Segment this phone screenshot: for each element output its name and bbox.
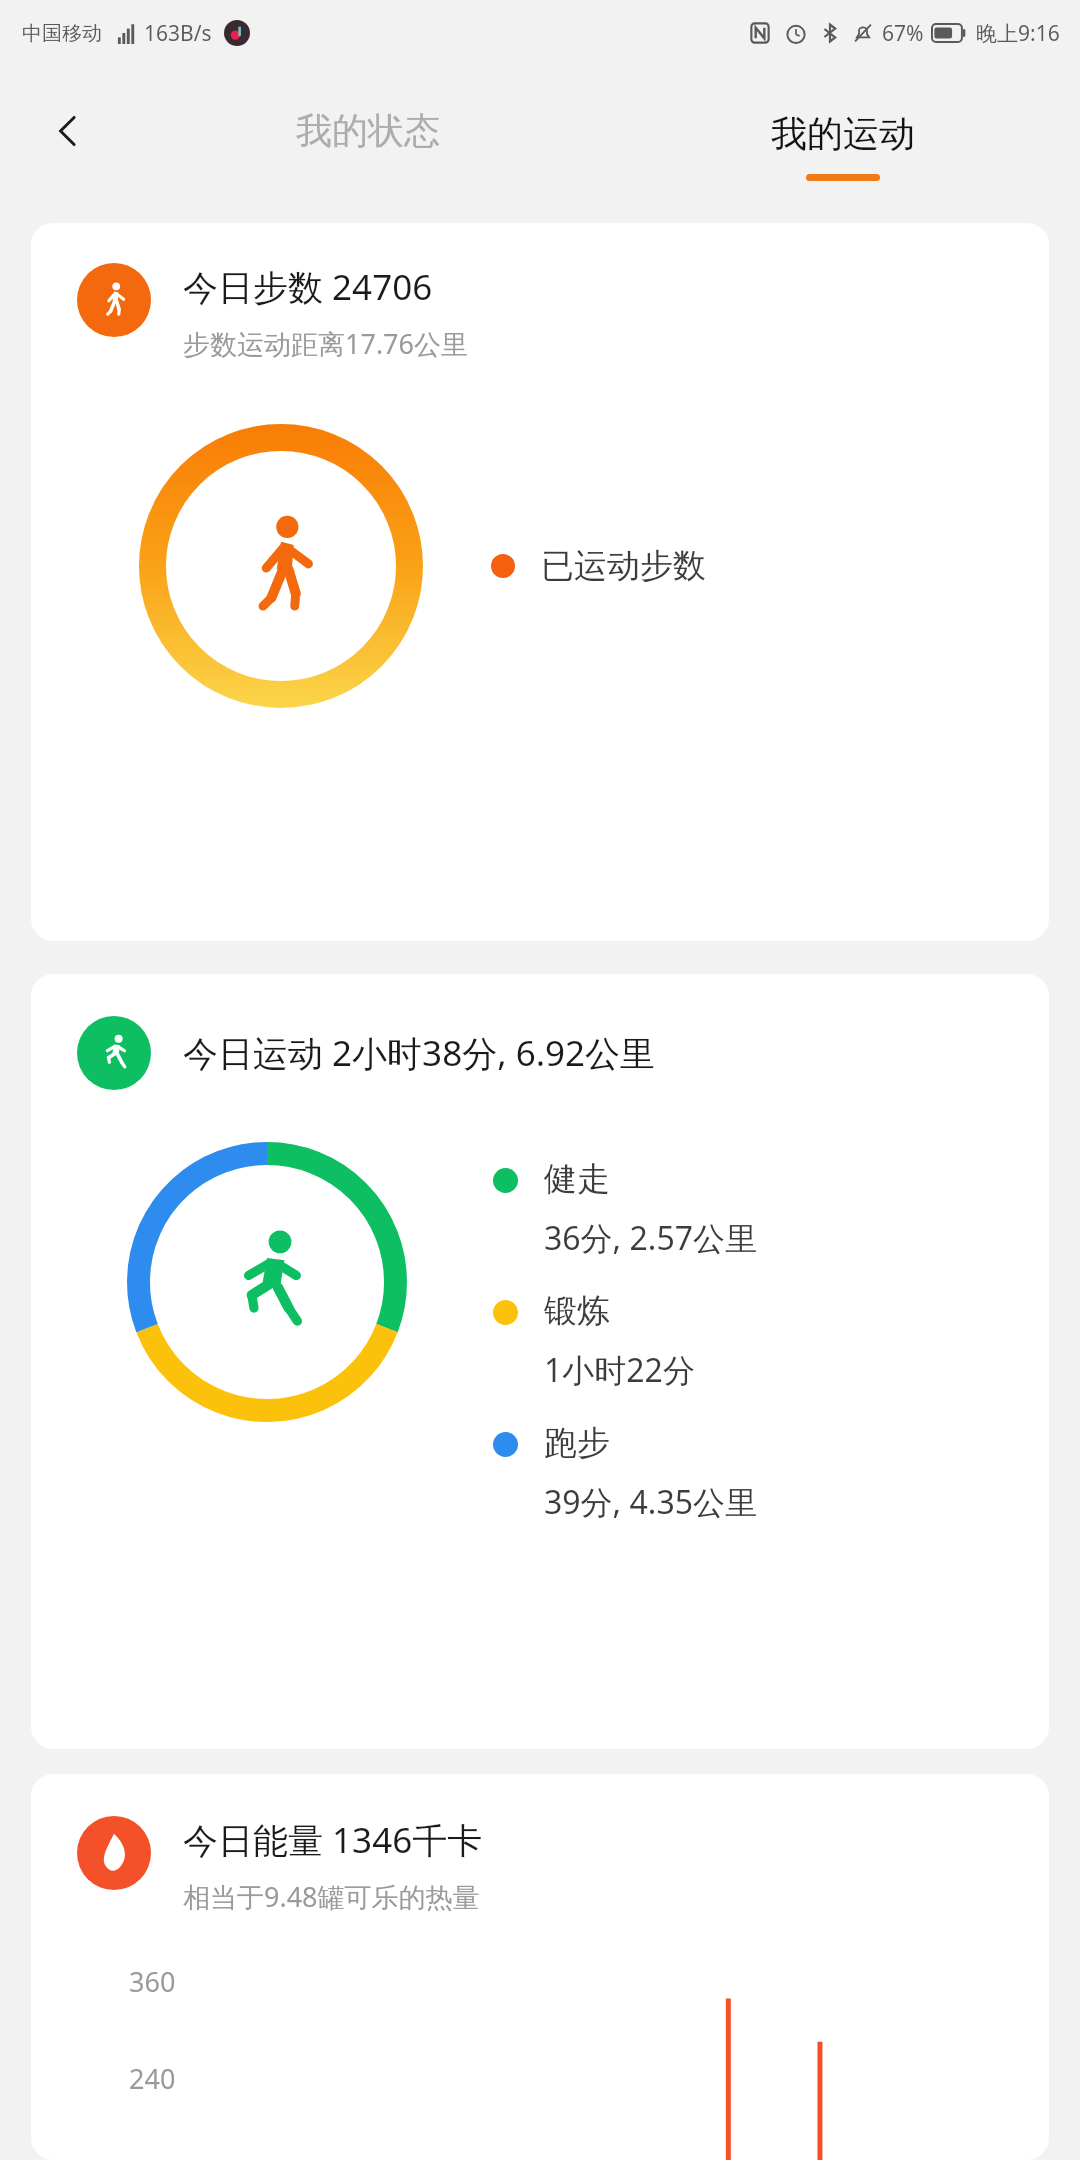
button[interactable]: 今日能量 1346千卡 xyxy=(31,1774,1049,2160)
staticText: 39分, 4.35公里 xyxy=(544,1480,757,1524)
staticText: 我的运动 xyxy=(771,111,915,156)
staticText: 163B/s xyxy=(144,19,212,48)
staticText: 中国移动 xyxy=(22,21,102,46)
staticText: 240 xyxy=(129,2060,176,2097)
button[interactable]: 我的运动 xyxy=(605,66,1080,195)
staticText: 健走 xyxy=(544,1158,610,1200)
staticText: 相当于9.48罐可乐的热量 xyxy=(183,1878,480,1915)
staticText: 我的状态 xyxy=(296,108,440,153)
staticText: 步数运动距离17.76公里 xyxy=(183,325,469,362)
staticText: 跑步 xyxy=(544,1422,610,1464)
button[interactable]: Back xyxy=(40,103,96,159)
button[interactable]: 今日运动 2小时38分, 6.92公里 xyxy=(31,974,1049,1749)
staticText: 36分, 2.57公里 xyxy=(544,1216,757,1260)
staticText: 今日运动 2小时38分, 6.92公里 xyxy=(183,1029,656,1077)
staticText: 67% xyxy=(882,19,924,48)
staticText: 360 xyxy=(129,1963,176,2000)
staticText: 今日步数 24706 xyxy=(183,263,442,311)
button[interactable]: 我的状态 xyxy=(130,66,605,195)
staticText: 已运动步数 xyxy=(541,545,706,587)
button[interactable]: 今日步数 24706 xyxy=(31,223,1049,941)
staticText: 1小时22分 xyxy=(544,1348,695,1392)
staticText: 晚上9:16 xyxy=(976,19,1060,48)
staticText: 今日能量 1346千卡 xyxy=(183,1816,483,1864)
staticText: 锻炼 xyxy=(544,1290,610,1332)
